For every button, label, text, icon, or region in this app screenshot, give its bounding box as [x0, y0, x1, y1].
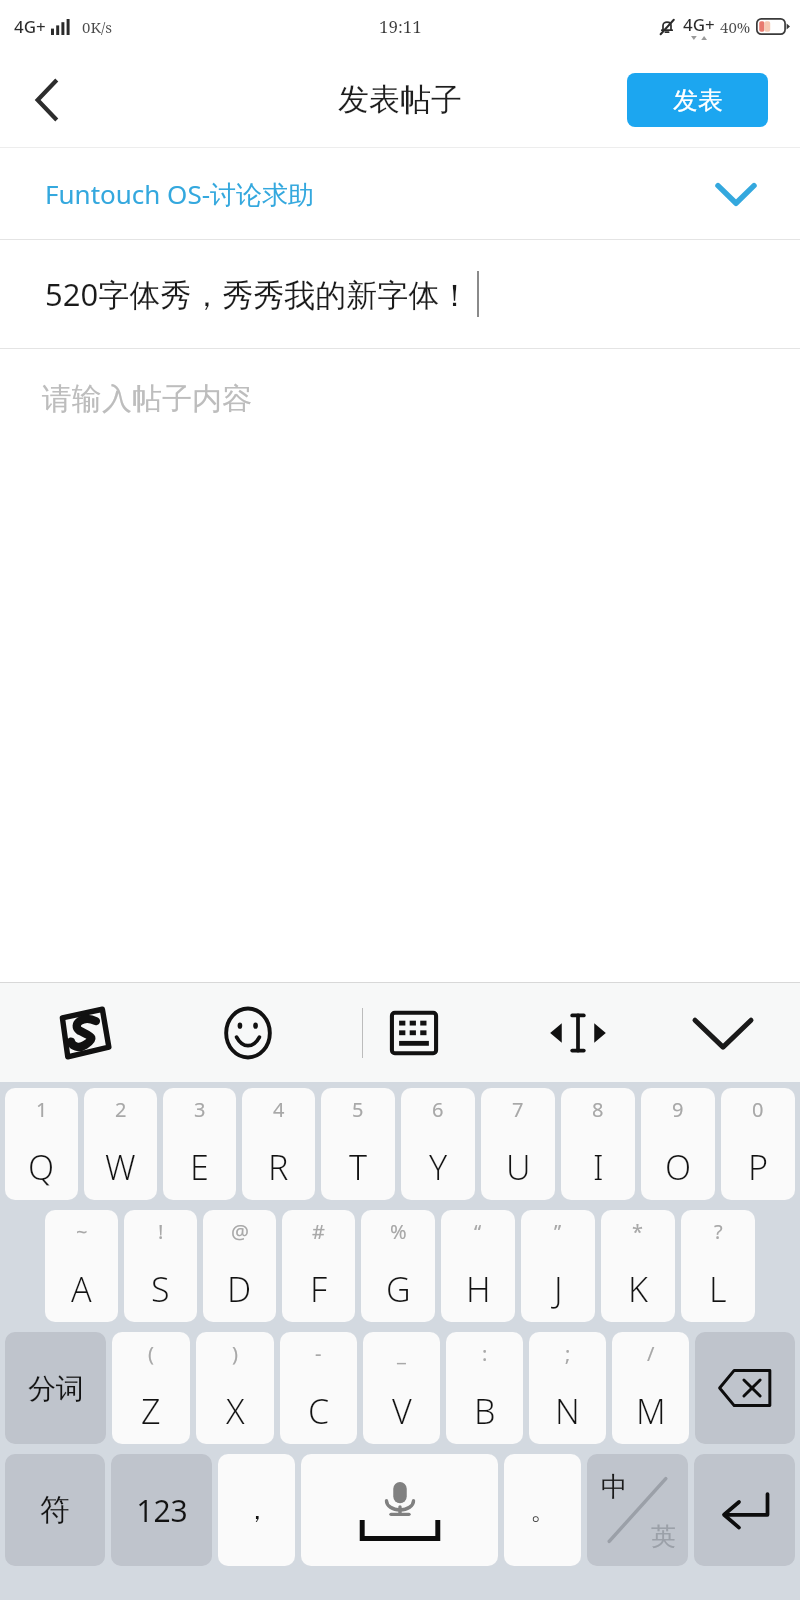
staticText: 4	[273, 1096, 285, 1123]
staticText: I	[593, 1144, 604, 1190]
button[interactable]: %	[361, 1210, 435, 1322]
staticText: L	[709, 1266, 727, 1312]
button[interactable]: :	[446, 1332, 523, 1444]
staticText: O	[665, 1144, 692, 1190]
button[interactable]: 9	[641, 1088, 715, 1200]
button[interactable]: ~	[45, 1210, 118, 1322]
staticText: %	[390, 1218, 407, 1245]
button[interactable]: 7	[481, 1088, 555, 1200]
staticText: /	[647, 1340, 655, 1367]
staticText: 6	[432, 1096, 444, 1123]
staticText: J	[554, 1266, 563, 1312]
button[interactable]: 符	[5, 1454, 105, 1566]
button[interactable]: 2	[84, 1088, 157, 1200]
staticText: ，	[244, 1494, 270, 1527]
staticText: Q	[28, 1144, 55, 1190]
staticText: )	[232, 1340, 238, 1367]
staticText: U	[506, 1144, 531, 1190]
button[interactable]: 5	[321, 1088, 395, 1200]
button[interactable]: Switch Chinese English	[587, 1454, 688, 1566]
button[interactable]: ;	[529, 1332, 606, 1444]
staticText: 4G+	[683, 13, 715, 36]
staticText: :	[482, 1340, 488, 1367]
button[interactable]: 8	[561, 1088, 635, 1200]
button[interactable]: 520字体秀，秀秀我的新字体！	[0, 240, 800, 348]
staticText: *	[632, 1218, 644, 1245]
button[interactable]: -	[280, 1332, 357, 1444]
staticText: ~	[76, 1218, 88, 1245]
button[interactable]: 3	[163, 1088, 236, 1200]
staticText: 2	[115, 1096, 127, 1123]
button[interactable]: _	[363, 1332, 440, 1444]
staticText: R	[268, 1144, 289, 1190]
button[interactable]: )	[196, 1332, 274, 1444]
button[interactable]: 发表	[627, 73, 768, 127]
button[interactable]: Hide keyboard	[679, 989, 767, 1077]
staticText: 3	[194, 1096, 206, 1123]
button[interactable]: /	[612, 1332, 689, 1444]
staticText: F	[310, 1266, 328, 1312]
staticText: #	[312, 1218, 325, 1245]
staticText: 请输入帖子内容	[42, 380, 252, 418]
staticText: B	[474, 1388, 496, 1434]
staticText: P	[748, 1144, 769, 1190]
button[interactable]: (	[112, 1332, 190, 1444]
staticText: 0K/s	[82, 17, 112, 37]
button[interactable]: 分词	[5, 1332, 106, 1444]
staticText: 发表帖子	[338, 80, 462, 119]
staticText: Y	[429, 1144, 448, 1190]
button[interactable]: *	[601, 1210, 675, 1322]
button[interactable]: Sogou input method	[40, 989, 128, 1077]
staticText: E	[190, 1144, 209, 1190]
staticText: 英	[651, 1521, 676, 1552]
staticText: ;	[565, 1340, 571, 1367]
staticText: K	[628, 1266, 648, 1312]
staticText: 5	[352, 1096, 364, 1123]
staticText: !	[158, 1218, 164, 1245]
staticText: 分词	[28, 1371, 84, 1406]
staticText: G	[386, 1266, 411, 1312]
staticText: 9	[672, 1096, 684, 1123]
staticText: Z	[141, 1388, 161, 1434]
staticText: 。	[530, 1494, 556, 1527]
staticText: W	[105, 1144, 136, 1190]
button[interactable]: @	[203, 1210, 276, 1322]
staticText: (	[148, 1340, 154, 1367]
staticText: 19:11	[379, 15, 422, 38]
button[interactable]: Move cursor	[534, 989, 622, 1077]
button[interactable]: #	[282, 1210, 355, 1322]
button[interactable]: ”	[521, 1210, 595, 1322]
button[interactable]: 。	[504, 1454, 581, 1566]
button[interactable]: Space	[301, 1454, 498, 1566]
staticText: M	[636, 1388, 666, 1434]
button[interactable]: Keyboard layout	[370, 989, 458, 1077]
button[interactable]: 0	[721, 1088, 795, 1200]
staticText: “	[474, 1218, 482, 1245]
button[interactable]: 6	[401, 1088, 475, 1200]
button[interactable]: 请输入帖子内容	[0, 349, 800, 449]
staticText: 40%	[720, 17, 751, 37]
button[interactable]: !	[124, 1210, 197, 1322]
staticText: 符	[40, 1491, 70, 1529]
button[interactable]: 4	[242, 1088, 315, 1200]
staticText: X	[226, 1388, 245, 1434]
button[interactable]: Funtouch OS-讨论求助	[0, 148, 800, 239]
staticText: S	[151, 1266, 170, 1312]
button[interactable]: ，	[218, 1454, 295, 1566]
staticText: D	[227, 1266, 252, 1312]
button[interactable]: 1	[5, 1088, 78, 1200]
staticText: 发表	[673, 85, 723, 116]
button[interactable]: 123	[111, 1454, 212, 1566]
button[interactable]: Backspace	[695, 1332, 795, 1444]
staticText: 123	[136, 1490, 188, 1531]
button[interactable]: Back	[8, 61, 86, 139]
button[interactable]: ?	[681, 1210, 755, 1322]
button[interactable]: Emoji	[204, 989, 292, 1077]
staticText: C	[308, 1388, 330, 1434]
staticText: -	[315, 1340, 322, 1367]
button[interactable]: “	[441, 1210, 515, 1322]
button[interactable]: Enter	[694, 1454, 795, 1566]
staticText: T	[349, 1144, 368, 1190]
staticText: A	[71, 1266, 92, 1312]
staticText: V	[392, 1388, 412, 1434]
